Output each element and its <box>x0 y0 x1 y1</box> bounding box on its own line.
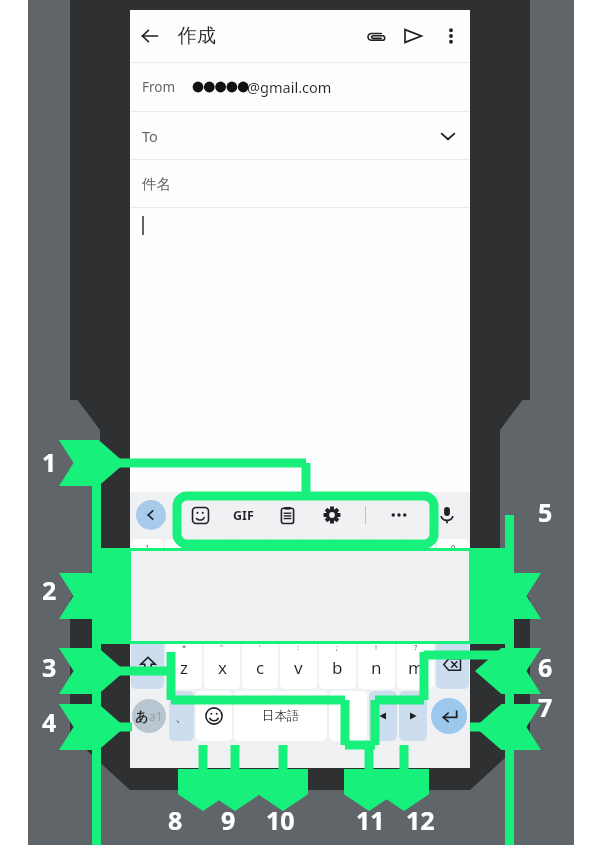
button[interactable]: * <box>166 639 202 689</box>
button[interactable]: To <box>130 112 470 159</box>
button[interactable]: Expand toolbar <box>136 500 166 530</box>
staticText: 。 <box>342 708 355 724</box>
button[interactable]: GIF <box>233 507 254 524</box>
button[interactable]: あ <box>130 690 168 742</box>
staticText: 1 <box>145 542 150 552</box>
staticText: 9 <box>417 542 422 552</box>
button[interactable]: 9 <box>403 539 435 587</box>
button[interactable]: Voice input <box>432 500 462 530</box>
button[interactable]: Right <box>399 691 427 741</box>
button[interactable]: : <box>280 639 317 689</box>
button[interactable]: ' <box>242 639 278 689</box>
button[interactable]: 件名 <box>130 160 470 207</box>
button[interactable]: More options <box>432 17 470 55</box>
staticText: " <box>220 642 224 652</box>
button[interactable]: Send <box>394 17 432 55</box>
button[interactable]: Shift <box>131 639 164 689</box>
button[interactable]: 、 <box>169 691 194 741</box>
button[interactable]: Backspace <box>436 639 469 689</box>
button[interactable] <box>130 208 470 492</box>
button[interactable]: 2 <box>165 539 197 587</box>
staticText: : <box>297 642 300 652</box>
staticText: @gmail.com <box>247 77 332 97</box>
button[interactable]: Enter <box>428 690 470 742</box>
staticText: 、 <box>175 708 188 724</box>
staticText: 5 <box>538 495 553 529</box>
button[interactable]: 3 <box>199 539 231 587</box>
button[interactable]: 7 <box>335 539 367 587</box>
staticText: a1 <box>149 708 163 724</box>
button[interactable]: From <box>130 63 470 111</box>
staticText: 8 <box>168 803 183 837</box>
button[interactable]: Left <box>369 691 397 741</box>
staticText: 日本語 <box>262 708 300 724</box>
staticText: 1 <box>42 445 57 479</box>
button[interactable]: 0 <box>437 539 469 587</box>
button[interactable]: 日本語 <box>234 691 327 741</box>
button[interactable]: 。 <box>329 691 367 741</box>
button[interactable]: Attach <box>356 17 394 55</box>
staticText: 0 <box>451 542 456 552</box>
button[interactable]: Clipboard <box>275 503 299 527</box>
staticText: 3 <box>42 650 57 684</box>
staticText: 7 <box>349 542 354 552</box>
button[interactable]: ! <box>358 639 395 689</box>
staticText: 12 <box>406 803 435 837</box>
staticText: 5 <box>281 542 286 552</box>
button[interactable]: 5 <box>267 539 299 587</box>
staticText: n <box>371 656 382 679</box>
button[interactable]: Emoji <box>196 691 232 741</box>
button[interactable]: More <box>387 503 411 527</box>
staticText: m <box>408 656 424 679</box>
button[interactable]: Stickers <box>188 503 212 527</box>
button[interactable]: 1 <box>131 539 163 587</box>
button[interactable]: Back <box>130 16 170 56</box>
button[interactable]: 8 <box>369 539 401 587</box>
staticText: 2 <box>179 542 184 552</box>
button[interactable]: ? <box>397 639 434 689</box>
button[interactable]: " <box>204 639 240 689</box>
button[interactable]: 6 <box>301 539 333 587</box>
staticText: 9 <box>221 803 236 837</box>
staticText: 3 <box>213 542 218 552</box>
button[interactable]: ; <box>319 639 356 689</box>
staticText: 8 <box>383 542 388 552</box>
staticText: ! <box>375 642 378 652</box>
staticText: ; <box>336 642 339 652</box>
button[interactable]: 4 <box>233 539 265 587</box>
staticText: 作成 <box>178 24 216 48</box>
staticText: あ <box>135 708 149 724</box>
staticText: 11 <box>356 803 385 837</box>
button[interactable]: Settings <box>320 503 344 527</box>
staticText: x <box>218 656 227 679</box>
